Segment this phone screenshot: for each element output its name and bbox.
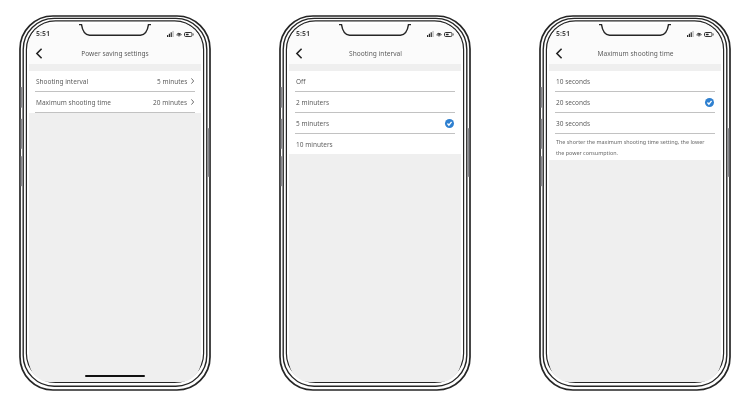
staticText: 5:51 — [36, 29, 50, 39]
button[interactable]: Off — [289, 71, 461, 91]
button[interactable]: 30 seconds — [549, 113, 721, 133]
staticText: Maximum shooting time — [36, 98, 112, 107]
staticText: Power saving settings — [81, 49, 149, 58]
button[interactable]: Back — [291, 45, 308, 62]
button[interactable]: Maximum shooting time — [29, 92, 201, 112]
other: Selected — [705, 98, 714, 107]
staticText: 5:51 — [556, 29, 570, 39]
other: Selected — [445, 119, 454, 128]
staticText: 5 minuters — [296, 119, 330, 128]
staticText: 10 minuters — [296, 140, 333, 149]
button[interactable]: Shooting interval — [29, 71, 201, 91]
button[interactable]: 10 seconds — [549, 71, 721, 91]
staticText: 20 seconds — [556, 98, 591, 107]
button[interactable]: 5 minuters — [289, 113, 461, 133]
staticText: Maximum shooting time — [597, 49, 674, 58]
button[interactable]: Back — [551, 45, 568, 62]
button[interactable]: 10 minuters — [289, 134, 461, 154]
staticText: Off — [296, 77, 306, 86]
button[interactable]: 20 seconds — [549, 92, 721, 112]
staticText: 20 minutes — [153, 98, 188, 107]
staticText: Shooting interval — [349, 49, 402, 58]
staticText: 10 seconds — [556, 77, 591, 86]
staticText: Shooting interval — [36, 77, 89, 86]
staticText: 5 minutes — [157, 77, 188, 86]
staticText: 30 seconds — [556, 119, 591, 128]
staticText: 2 minuters — [296, 98, 330, 107]
button[interactable]: 2 minuters — [289, 92, 461, 112]
staticText: The shorter the maximum shooting time se… — [556, 138, 714, 156]
staticText: 5:51 — [296, 29, 310, 39]
button[interactable]: Back — [31, 45, 48, 62]
